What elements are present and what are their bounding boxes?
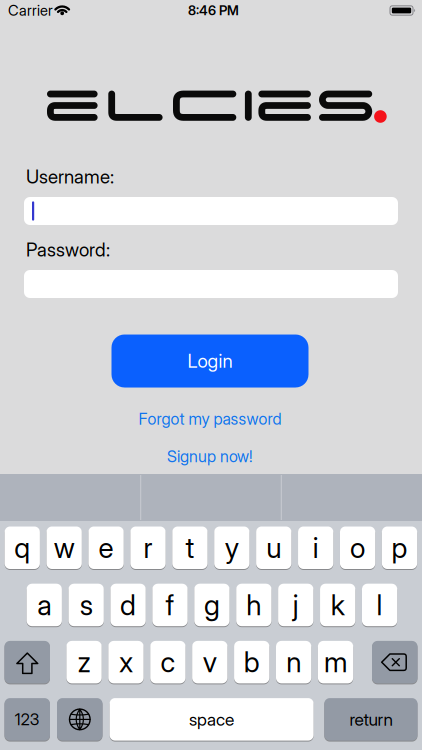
- button[interactable]: l: [362, 584, 397, 626]
- button[interactable]: [4, 641, 50, 683]
- staticText: g: [204, 588, 220, 621]
- button[interactable]: k: [320, 584, 355, 626]
- staticText: s: [80, 588, 93, 621]
- button[interactable]: y: [214, 526, 249, 569]
- button[interactable]: Forgot my password: [138, 410, 281, 428]
- button[interactable]: c: [150, 641, 185, 683]
- staticText: Password:: [26, 239, 110, 261]
- staticText: return: [349, 709, 392, 729]
- staticText: v: [203, 646, 217, 679]
- staticText: d: [120, 588, 136, 621]
- staticText: 8:46 PM: [188, 3, 239, 18]
- staticText: o: [350, 531, 365, 564]
- button[interactable]: s: [68, 584, 104, 626]
- button[interactable]: [372, 641, 417, 683]
- button[interactable]: [57, 698, 102, 741]
- staticText: b: [244, 646, 260, 679]
- staticText: y: [225, 531, 239, 564]
- button[interactable]: x: [108, 641, 144, 683]
- staticText: l: [377, 588, 383, 621]
- button[interactable]: e: [88, 526, 124, 569]
- button[interactable]: n: [276, 641, 311, 683]
- button[interactable]: return: [324, 698, 417, 741]
- staticText: f: [165, 588, 174, 621]
- button[interactable]: a: [27, 584, 62, 626]
- staticText: t: [185, 531, 194, 564]
- button[interactable]: u: [256, 526, 291, 569]
- staticText: n: [286, 646, 301, 679]
- button[interactable]: z: [66, 641, 102, 683]
- button[interactable]: g: [194, 584, 230, 626]
- button[interactable]: v: [192, 641, 227, 683]
- button[interactable]: w: [46, 526, 82, 569]
- button[interactable]: h: [236, 584, 271, 626]
- staticText: space: [189, 709, 234, 729]
- staticText: m: [324, 646, 347, 679]
- button[interactable]: m: [318, 641, 353, 683]
- staticText: i: [313, 531, 319, 564]
- button[interactable]: [24, 197, 398, 225]
- button[interactable]: o: [340, 526, 375, 569]
- button[interactable]: space: [110, 698, 314, 741]
- staticText: u: [266, 531, 281, 564]
- staticText: r: [143, 531, 152, 564]
- staticText: c: [160, 646, 175, 679]
- staticText: z: [78, 646, 91, 679]
- button[interactable]: q: [5, 526, 40, 569]
- staticText: w: [54, 531, 75, 564]
- staticText: Login: [187, 350, 232, 372]
- button[interactable]: j: [278, 584, 313, 626]
- button[interactable]: t: [172, 526, 208, 569]
- button[interactable]: 123: [4, 698, 50, 741]
- button[interactable]: p: [382, 526, 417, 569]
- button[interactable]: Signup now!: [167, 447, 253, 466]
- staticText: Signup now!: [167, 447, 253, 466]
- button[interactable]: Login: [111, 334, 308, 387]
- button[interactable]: d: [110, 584, 146, 626]
- staticText: p: [391, 531, 407, 564]
- staticText: a: [37, 588, 51, 621]
- staticText: Username:: [26, 166, 114, 188]
- button[interactable]: f: [152, 584, 188, 626]
- staticText: 123: [15, 710, 40, 729]
- staticText: e: [99, 531, 114, 564]
- button[interactable]: b: [234, 641, 269, 683]
- staticText: Forgot my password: [138, 410, 281, 428]
- staticText: k: [331, 588, 345, 621]
- staticText: x: [119, 646, 133, 679]
- staticText: j: [293, 588, 299, 621]
- staticText: q: [14, 531, 30, 564]
- staticText: Carrier: [8, 2, 53, 19]
- button[interactable]: r: [130, 526, 166, 569]
- staticText: h: [246, 588, 261, 621]
- button[interactable]: i: [298, 526, 333, 569]
